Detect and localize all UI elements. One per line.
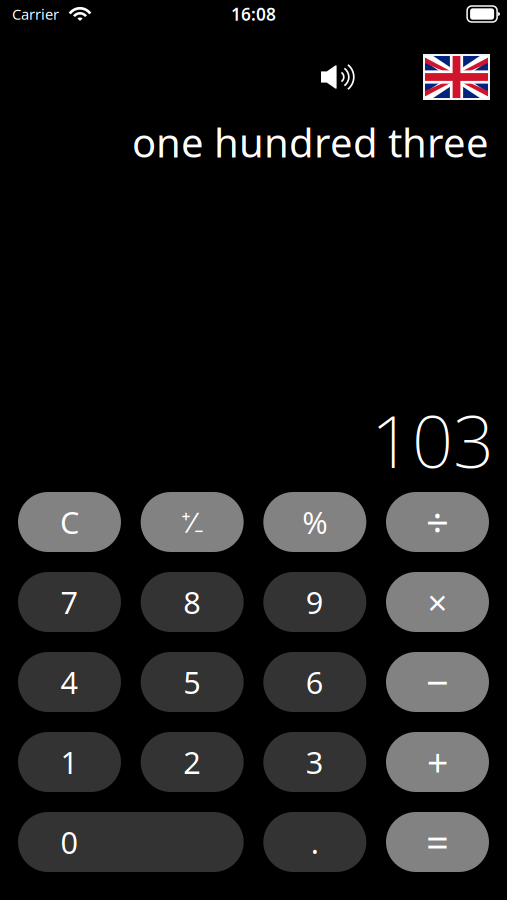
staticText: = [426,815,449,868]
staticText: 16:08 [231,2,276,25]
staticText: ⁺⁄₋ [181,503,203,541]
staticText: × [427,579,447,625]
button[interactable]: 5 [141,652,244,712]
button[interactable]: + [386,732,489,792]
staticText: 5 [183,662,201,702]
button[interactable]: 2 [141,732,244,792]
staticText: C [60,502,79,542]
staticText: Carrier [12,4,59,24]
button[interactable]: 0 [18,812,244,872]
button[interactable]: = [386,812,489,872]
staticText: 8 [183,582,201,622]
button[interactable]: 7 [18,572,121,632]
staticText: 7 [60,582,78,622]
button[interactable]: % [263,492,366,552]
button[interactable]: Choose language [423,54,490,100]
staticText: 4 [60,662,78,702]
staticText: 1 [60,742,78,782]
button[interactable]: C [18,492,121,552]
staticText: + [427,737,448,787]
button[interactable]: 3 [263,732,366,792]
button[interactable]: Speak number [321,54,354,100]
button[interactable]: 1 [18,732,121,792]
staticText: . [311,822,319,862]
staticText: one hundred three [132,115,489,168]
button[interactable]: ⁺⁄₋ [141,492,244,552]
staticText: % [302,502,327,542]
staticText: 6 [306,662,324,702]
button[interactable]: . [263,812,366,872]
button[interactable]: 8 [141,572,244,632]
button[interactable]: ÷ [386,492,489,552]
button[interactable]: 4 [18,652,121,712]
staticText: 103 [371,392,494,488]
staticText: 0 [60,822,78,862]
button[interactable]: 6 [263,652,366,712]
staticText: − [426,655,449,708]
staticText: 3 [306,742,324,782]
staticText: 2 [183,742,201,782]
staticText: 9 [306,582,324,622]
button[interactable]: − [386,652,489,712]
button[interactable]: 9 [263,572,366,632]
button[interactable]: × [386,572,489,632]
staticText: ÷ [426,495,449,548]
